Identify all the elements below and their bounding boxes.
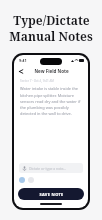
staticText: Manual Notes bbox=[9, 28, 93, 44]
button[interactable]: Dictate or type a note… bbox=[19, 163, 83, 173]
button[interactable]: Dictate bbox=[19, 177, 25, 183]
button[interactable]: Back bbox=[17, 68, 24, 75]
staticText: Dictate or type a note… bbox=[29, 166, 80, 171]
button[interactable]: Attach photo bbox=[28, 177, 34, 183]
staticText: SAVE NOTE bbox=[39, 192, 64, 197]
staticText: New Field Note bbox=[34, 68, 69, 74]
button[interactable]: Back bbox=[14, 66, 88, 76]
staticText: Water intake is stable inside the kitche… bbox=[20, 86, 82, 116]
staticText: 9:41 bbox=[19, 58, 27, 63]
staticText: Sector 7 · Oct 4, 9:41 AM bbox=[20, 79, 88, 83]
button[interactable]: SAVE NOTE bbox=[18, 188, 84, 200]
staticText: Type/Dictate bbox=[13, 12, 90, 28]
